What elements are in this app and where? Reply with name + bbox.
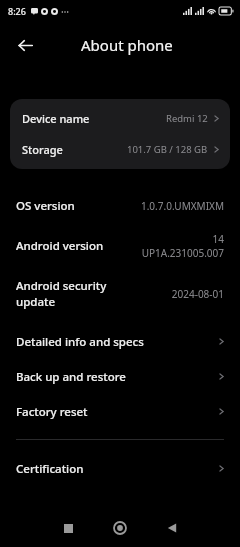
staticText: Device name — [22, 111, 90, 126]
staticText: Android version — [16, 238, 135, 254]
button[interactable]: Back — [156, 512, 188, 544]
staticText: Certification — [16, 461, 217, 477]
button[interactable]: Back — [10, 30, 40, 60]
staticText: 101.7 GB / 128 GB — [127, 143, 208, 156]
staticText: 2024-08-01 — [171, 287, 224, 301]
staticText: Factory reset — [16, 404, 217, 420]
staticText: 1.0.7.0.UMXMIXM — [140, 199, 224, 213]
staticText: Back up and restore — [16, 369, 217, 385]
button[interactable]: Recent apps — [52, 512, 84, 544]
staticText: Storage — [22, 142, 63, 157]
staticText: Android security update — [16, 278, 165, 309]
staticText: Redmi 12 — [166, 112, 208, 125]
staticText: UP1A.231005.007 — [141, 246, 224, 260]
button[interactable]: OS version — [0, 189, 240, 223]
button[interactable]: Storage — [10, 134, 230, 165]
staticText: OS version — [16, 198, 134, 214]
button[interactable]: Android security update — [0, 269, 240, 318]
button[interactable]: Back up and restore — [0, 359, 240, 394]
button[interactable]: Detailed info and specs — [0, 324, 240, 359]
staticText: 14 — [212, 232, 224, 246]
button[interactable]: Home — [104, 512, 136, 544]
button[interactable]: Certification — [0, 451, 240, 486]
staticText: 8:26 — [8, 5, 26, 17]
staticText: Detailed info and specs — [16, 334, 217, 350]
button[interactable]: Factory reset — [0, 394, 240, 429]
button[interactable]: Android version — [0, 223, 240, 269]
staticText: About phone — [81, 35, 173, 55]
button[interactable]: Device name — [10, 103, 230, 134]
